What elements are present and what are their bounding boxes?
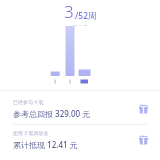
staticText: /52周: [75, 10, 97, 22]
button[interactable]: 参考总回报详情: [136, 102, 150, 116]
button[interactable]: [0, 26, 160, 90]
staticText: 3: [64, 0, 74, 23]
staticText: 已参与: [73, 24, 88, 26]
staticText: 使用 3 笔回馈金: [13, 130, 49, 137]
staticText: 累计抵现 12.41 元: [13, 139, 78, 150]
button[interactable]: 使用 3 笔回馈金: [0, 125, 160, 155]
button[interactable]: 累计抵现详情: [136, 133, 150, 147]
button[interactable]: 已经参与 4 笔: [0, 94, 160, 124]
staticText: 已经参与 4 笔: [13, 99, 44, 106]
button[interactable]: 3: [0, 0, 160, 26]
staticText: 参考总回报 329.00 元: [13, 108, 91, 119]
